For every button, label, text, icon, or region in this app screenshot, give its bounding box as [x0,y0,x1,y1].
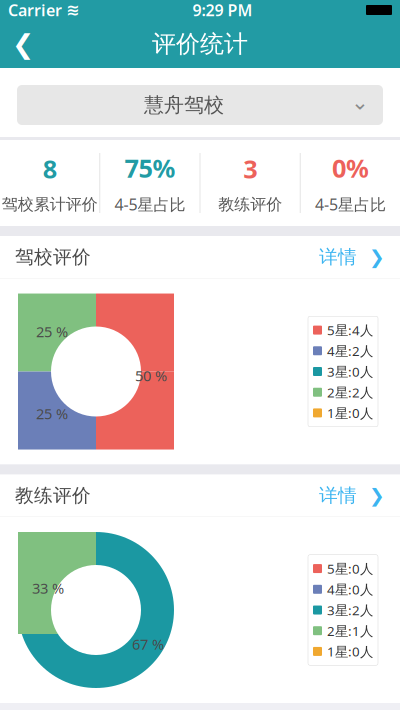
staticText: 25 % [36,404,68,423]
staticText: 75% [124,151,175,185]
staticText: 1星:0人 [327,643,373,660]
staticText: 详情 [319,245,357,268]
staticText: 慧舟驾校 [144,93,224,117]
staticText: 2星:1人 [327,622,373,640]
staticText: ❯ [369,485,385,506]
staticText: 4星:0人 [327,580,373,598]
staticText: 3星:0人 [327,363,373,380]
staticText: 评价统计 [152,29,248,59]
staticText: Carrier [8,0,62,21]
staticText: ⌄ [351,90,369,114]
staticText: ≋ [66,1,79,19]
staticText: 5星:4人 [327,321,373,339]
staticText: 0% [332,151,369,185]
staticText: 2星:2人 [327,383,373,401]
staticText: 教练评价 [218,194,282,214]
staticText: 4星:2人 [327,342,373,360]
staticText: 驾校累计评价 [2,194,98,214]
staticText: 3星:2人 [327,601,373,619]
staticText: 1星:0人 [327,404,373,422]
button[interactable]: 慧舟驾校 [17,85,383,125]
staticText: 33 % [32,578,64,598]
staticText: 67 % [132,634,164,654]
staticText: 4-5星占比 [315,194,386,215]
staticText: 驾校评价 [15,245,91,268]
button[interactable]: 详情 [319,245,385,268]
staticText: 3 [243,152,257,185]
staticText: ❯ [369,246,385,268]
staticText: 50 % [135,366,167,385]
staticText: 5星:0人 [327,560,373,577]
staticText: 25 % [36,322,68,341]
staticText: ❮ [12,29,34,59]
staticText: 教练评价 [15,484,91,507]
staticText: 4-5星占比 [114,194,185,215]
button[interactable]: 详情 [319,484,385,507]
staticText: 详情 [319,484,357,507]
staticText: 9:29 PM [192,0,252,21]
button[interactable]: Back [0,21,46,67]
staticText: 8 [43,152,57,185]
